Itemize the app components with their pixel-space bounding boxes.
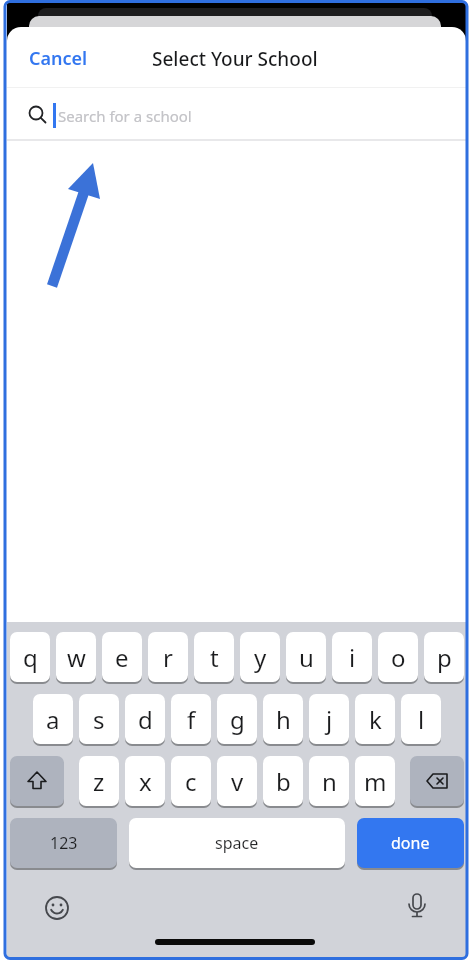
staticText: s <box>93 703 105 736</box>
staticText: j <box>326 703 333 736</box>
staticText: r <box>163 641 173 674</box>
staticText: w <box>67 641 86 674</box>
staticText: k <box>369 703 382 736</box>
staticText: i <box>349 641 356 674</box>
staticText: b <box>276 765 291 798</box>
staticText: q <box>23 641 38 674</box>
staticText: space <box>215 832 259 854</box>
staticText: x <box>139 765 152 798</box>
staticText: v <box>231 765 244 798</box>
staticText: z <box>93 765 105 798</box>
staticText: f <box>187 703 196 736</box>
staticText: c <box>185 765 197 798</box>
staticText: Search for a school <box>58 106 192 126</box>
staticText: d <box>138 703 153 736</box>
staticText: e <box>115 641 129 674</box>
staticText: u <box>299 641 314 674</box>
staticText: 123 <box>50 832 78 854</box>
staticText: done <box>391 832 430 854</box>
staticText: h <box>276 703 291 736</box>
staticText: Select Your School <box>152 46 318 72</box>
staticText: a <box>46 703 60 736</box>
staticText: l <box>418 703 425 736</box>
staticText: y <box>254 641 267 674</box>
staticText: Cancel <box>29 46 88 71</box>
staticText: o <box>391 641 406 674</box>
staticText: n <box>322 765 337 798</box>
staticText: g <box>230 703 245 736</box>
staticText: t <box>210 641 219 674</box>
staticText: m <box>364 765 387 798</box>
staticText: p <box>437 641 452 674</box>
